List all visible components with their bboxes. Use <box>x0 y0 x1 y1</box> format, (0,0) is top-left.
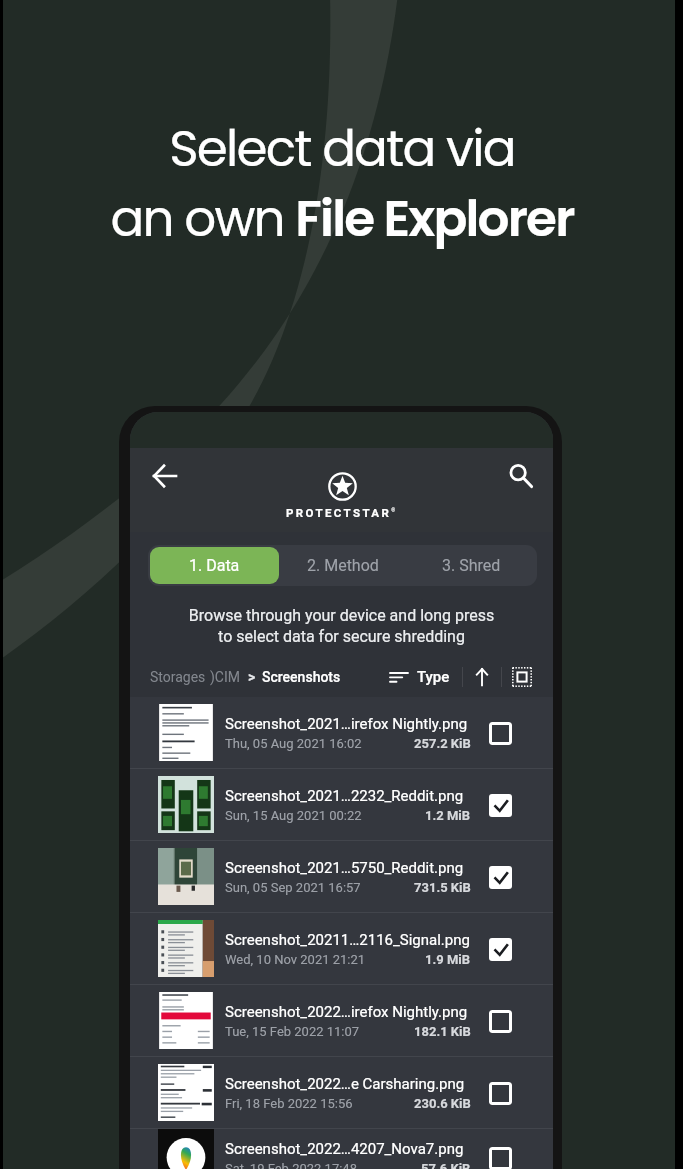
button[interactable]: Select file <box>485 934 515 964</box>
button[interactable]: Search <box>501 456 541 496</box>
button[interactable]: Select file <box>485 1078 515 1108</box>
staticText: 57.6 KiB <box>421 1161 471 1169</box>
button[interactable]: Type <box>388 668 452 686</box>
staticText: 1. Data <box>189 556 240 575</box>
staticText: 1.9 MiB <box>425 952 471 967</box>
button[interactable]: Screenshot_2021…5750_Reddit.png <box>130 841 553 912</box>
staticText: 731.5 KiB <box>414 880 471 895</box>
staticText: Browse through your device and long pres… <box>130 606 553 646</box>
staticText: )CIM <box>210 669 241 685</box>
staticText: 2. Method <box>307 556 379 575</box>
button[interactable]: 3. Shred <box>407 547 535 584</box>
staticText: Fri, 18 Feb 2022 15:56 <box>225 1096 353 1111</box>
staticText: > <box>248 669 256 685</box>
button[interactable]: Select file <box>485 1143 515 1169</box>
button[interactable]: Sort ascending <box>472 667 492 687</box>
other: Protectstar logo <box>328 472 357 501</box>
button[interactable]: Screenshot_20211…2116_Signal.png <box>130 913 553 984</box>
button[interactable]: Screenshot_2022…4207_Nova7.png <box>130 1129 553 1169</box>
staticText: Type <box>417 668 450 686</box>
staticText: Screenshots <box>262 669 341 685</box>
staticText: Screenshot_20211…2116_Signal.png <box>225 931 470 949</box>
staticText: Wed, 10 Nov 2021 21:21 <box>225 952 366 967</box>
staticText: Screenshot_2021…irefox Nightly.png <box>225 715 468 733</box>
button[interactable]: Screenshot_2021…2232_Reddit.png <box>130 769 553 840</box>
staticText: Sun, 05 Sep 2021 16:57 <box>225 880 361 895</box>
staticText: Sat, 19 Feb 2022 17:48 <box>225 1161 357 1169</box>
staticText: 3. Shred <box>442 556 501 575</box>
staticText: Screenshot_2021…2232_Reddit.png <box>225 787 464 805</box>
staticText: Screenshot_2022…4207_Nova7.png <box>225 1140 464 1158</box>
button[interactable]: Select file <box>485 1006 515 1036</box>
button[interactable]: Back <box>145 456 185 496</box>
staticText: an own File Explorer <box>110 184 574 254</box>
staticText: Thu, 05 Aug 2021 16:02 <box>225 736 362 751</box>
button[interactable]: 1. Data <box>150 547 279 584</box>
button[interactable]: Screenshot_2022…e Carsharing.png <box>130 1057 553 1128</box>
staticText: Tue, 15 Feb 2022 11:07 <box>225 1024 360 1039</box>
staticText: 230.6 KiB <box>414 1096 471 1111</box>
staticText: Screenshot_2021…5750_Reddit.png <box>225 859 464 877</box>
staticText: 257.2 KiB <box>414 736 471 751</box>
staticText: Storages <box>150 669 206 685</box>
button[interactable]: Select all <box>512 667 532 687</box>
button[interactable]: Screenshot_2021…irefox Nightly.png <box>130 697 553 768</box>
staticText: Screenshot_2022…e Carsharing.png <box>225 1075 465 1093</box>
button[interactable]: 2. Method <box>279 547 407 584</box>
button[interactable]: Select file <box>485 790 515 820</box>
button[interactable]: Screenshot_2022…irefox Nightly.png <box>130 985 553 1056</box>
staticText: Screenshot_2022…irefox Nightly.png <box>225 1003 468 1021</box>
button[interactable]: Select file <box>485 718 515 748</box>
staticText: Select data via <box>169 114 515 184</box>
button[interactable]: Select file <box>485 862 515 892</box>
staticText: PROTECTSTAR® <box>286 506 398 519</box>
staticText: Sun, 15 Aug 2021 00:22 <box>225 808 362 823</box>
staticText: 1.2 MiB <box>425 808 471 823</box>
staticText: 182.1 KiB <box>414 1024 471 1039</box>
